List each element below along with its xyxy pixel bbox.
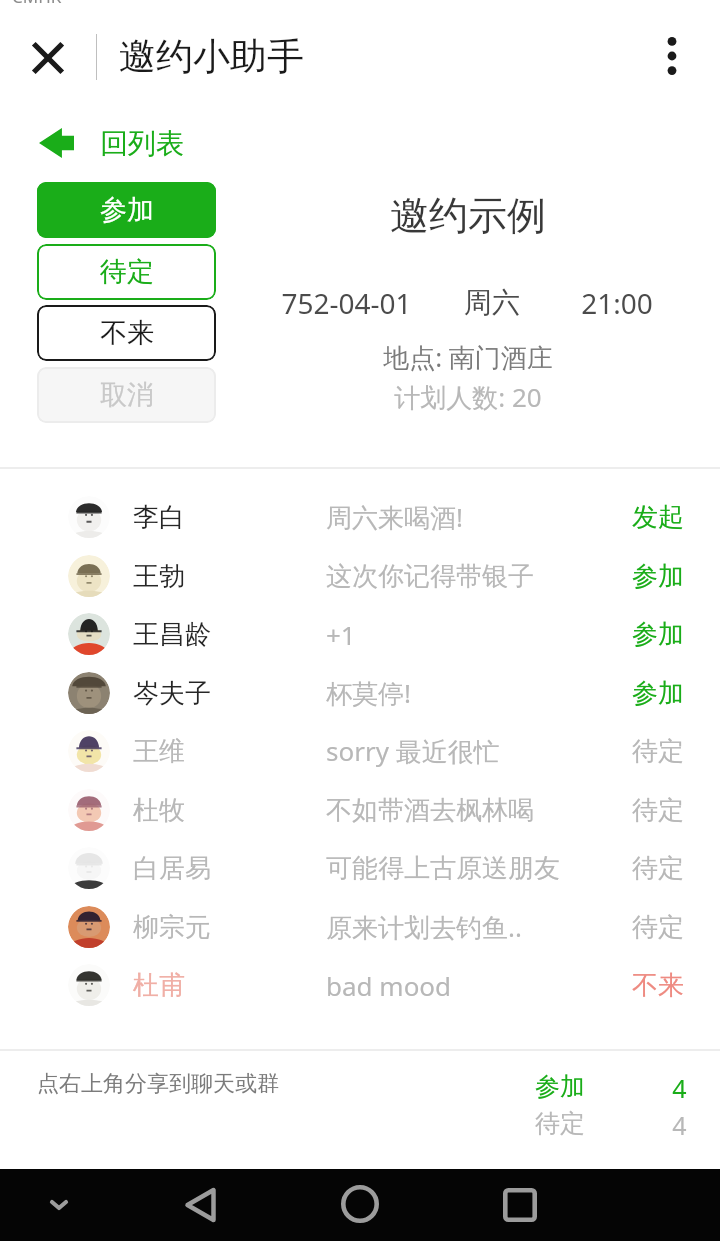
staticText: 待定 xyxy=(632,794,684,827)
button[interactable]: 柳宗元 xyxy=(0,898,720,956)
staticText: 杯莫停! xyxy=(326,675,411,711)
button[interactable]: 白居易 xyxy=(0,839,720,897)
staticText: 参加 xyxy=(632,677,684,710)
staticText: 李白 xyxy=(133,501,185,534)
staticText: 点右上角分享到聊天或群 xyxy=(37,1070,279,1098)
staticText: 可能得上古原送朋友 xyxy=(326,852,560,885)
staticText: 计划人数: 20 xyxy=(394,379,542,415)
staticText: 杜牧 xyxy=(133,794,185,827)
button[interactable]: 李白 xyxy=(0,488,720,546)
button[interactable]: 取消 xyxy=(37,367,216,423)
staticText: 参加 xyxy=(535,1071,585,1102)
staticText: +1 xyxy=(326,617,356,652)
staticText: 不来 xyxy=(632,969,684,1002)
staticText: 取消 xyxy=(100,378,154,412)
staticText: 王维 xyxy=(133,735,185,768)
staticText: 这次你记得带银子 xyxy=(326,560,534,593)
button[interactable]: 杜牧 xyxy=(0,781,720,839)
staticText: 待定 xyxy=(632,735,684,768)
staticText: 4 xyxy=(672,1108,687,1142)
button[interactable]: 岑夫子 xyxy=(0,664,720,722)
staticText: 柳宗元 xyxy=(133,911,211,944)
button[interactable]: 点右上角分享到聊天或群 xyxy=(0,1052,340,1112)
staticText: 不如带酒去枫林喝 xyxy=(326,794,534,827)
staticText: bad mood xyxy=(326,968,452,1003)
button[interactable]: 杜甫 xyxy=(0,956,720,1014)
button[interactable]: 待定 xyxy=(37,244,216,300)
button[interactable]: 王维 xyxy=(0,722,720,780)
staticText: 21:00 xyxy=(581,284,653,322)
button[interactable]: 参加 xyxy=(37,182,216,238)
staticText: 原来计划去钓鱼.. xyxy=(326,909,522,945)
button[interactable]: 王昌龄 xyxy=(0,605,720,663)
button[interactable]: Recent apps xyxy=(490,1175,550,1235)
staticText: 回列表 xyxy=(100,126,184,161)
button[interactable]: More options xyxy=(640,22,704,90)
staticText: 参加 xyxy=(632,618,684,651)
staticText: 参加 xyxy=(100,193,154,227)
button[interactable]: 不来 xyxy=(37,305,216,361)
button[interactable]: Close xyxy=(14,22,82,90)
staticText: 待定 xyxy=(632,911,684,944)
staticText: 岑夫子 xyxy=(133,677,211,710)
staticText: 杜甫 xyxy=(133,969,185,1002)
staticText: 待定 xyxy=(535,1108,585,1139)
staticText: 地点: 南门酒庄 xyxy=(383,339,553,375)
staticText: 4 xyxy=(672,1071,687,1105)
staticText: sorry 最近很忙 xyxy=(326,733,500,769)
button[interactable]: 待定 xyxy=(500,1100,700,1138)
staticText: 白居易 xyxy=(133,852,211,885)
staticText: 待定 xyxy=(632,852,684,885)
button[interactable]: Back xyxy=(170,1175,230,1235)
button[interactable]: Hide keyboard xyxy=(29,1175,89,1235)
staticText: 王勃 xyxy=(133,560,185,593)
button[interactable]: 回列表 xyxy=(39,119,184,167)
staticText: 参加 xyxy=(632,560,684,593)
staticText: 周六 xyxy=(464,285,520,320)
staticText: 待定 xyxy=(100,255,154,289)
staticText: 752-04-01 xyxy=(281,284,412,322)
staticText: 邀约示例 xyxy=(390,191,546,240)
staticText: CMHK xyxy=(12,0,62,8)
staticText: 不来 xyxy=(100,316,154,350)
button[interactable]: 王勃 xyxy=(0,547,720,605)
staticText: 周六来喝酒! xyxy=(326,499,463,535)
staticText: 王昌龄 xyxy=(133,618,211,651)
button[interactable]: Home xyxy=(330,1174,390,1234)
staticText: 邀约小助手 xyxy=(119,33,304,80)
button[interactable]: 参加 xyxy=(500,1062,700,1100)
staticText: 发起 xyxy=(632,501,684,534)
